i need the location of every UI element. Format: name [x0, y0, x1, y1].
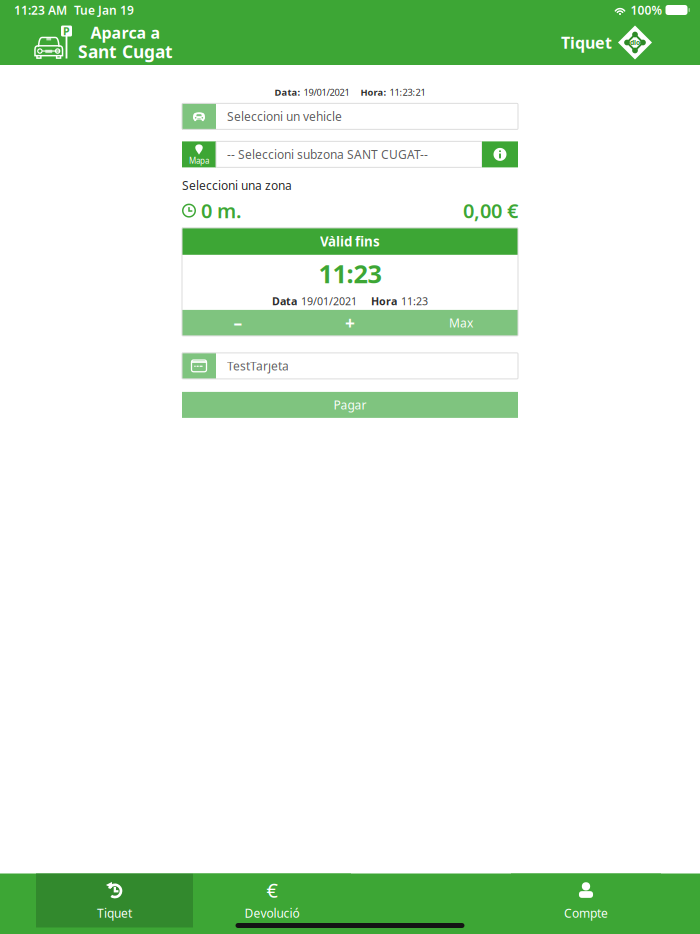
button[interactable]: Mapa — [182, 141, 216, 167]
staticText: € — [266, 877, 277, 903]
staticText: Max — [449, 315, 473, 331]
staticText: 11:23 AM — [14, 2, 67, 18]
staticText: Data: — [274, 86, 300, 98]
staticText: Tiquet — [97, 905, 132, 921]
staticText: P — [63, 24, 70, 38]
button[interactable]: Informació — [482, 141, 518, 167]
staticText: dlo — [630, 38, 640, 47]
staticText: Pagar — [333, 397, 366, 413]
staticText: Seleccioni un vehicle — [227, 108, 342, 124]
button[interactable]: Max — [406, 310, 518, 336]
staticText: 19/01/2021 — [303, 86, 349, 98]
staticText: Compte — [564, 905, 608, 921]
staticText: 19/01/2021 — [301, 294, 357, 308]
staticText: 100% — [630, 2, 662, 18]
staticText: 0 m. — [201, 197, 242, 224]
staticText: – — [233, 311, 242, 334]
staticText: 0,00 € — [463, 197, 518, 224]
staticText: Tiquet — [561, 32, 612, 53]
staticText: Data — [272, 294, 297, 308]
button[interactable]: Pagar — [182, 392, 518, 418]
button[interactable]: TestTarjeta — [182, 353, 518, 379]
staticText: 11:23 — [318, 256, 381, 290]
button[interactable]: Seleccioni un vehicle — [182, 103, 518, 129]
staticText: 11:23:21 — [389, 86, 425, 98]
button[interactable]: Més temps — [294, 310, 406, 336]
staticText: Seleccioni una zona — [182, 177, 292, 193]
staticText: -- Seleccioni subzona SANT CUGAT-- — [227, 146, 428, 162]
staticText: Aparca a — [90, 22, 160, 43]
button[interactable]: Compte — [511, 873, 661, 927]
staticText: 11:23 — [401, 294, 428, 308]
staticText: Hora: — [360, 86, 386, 98]
staticText: Devolució — [244, 905, 299, 921]
button[interactable]: Tiquet — [561, 25, 652, 59]
staticText: Vàlid fins — [320, 232, 380, 250]
button[interactable]: Menys temps — [182, 310, 294, 336]
button[interactable]: -- Seleccioni subzona SANT CUGAT-- — [216, 141, 482, 167]
button[interactable]: Tiquet — [36, 873, 193, 927]
staticText: TestTarjeta — [227, 358, 289, 374]
staticText: Mapa — [189, 155, 209, 166]
staticText: Hora — [371, 294, 397, 308]
staticText: + — [345, 311, 355, 334]
staticText: Tue Jan 19 — [74, 2, 134, 18]
button[interactable]: € — [193, 873, 351, 927]
staticText: Sant Cugat — [78, 40, 173, 63]
